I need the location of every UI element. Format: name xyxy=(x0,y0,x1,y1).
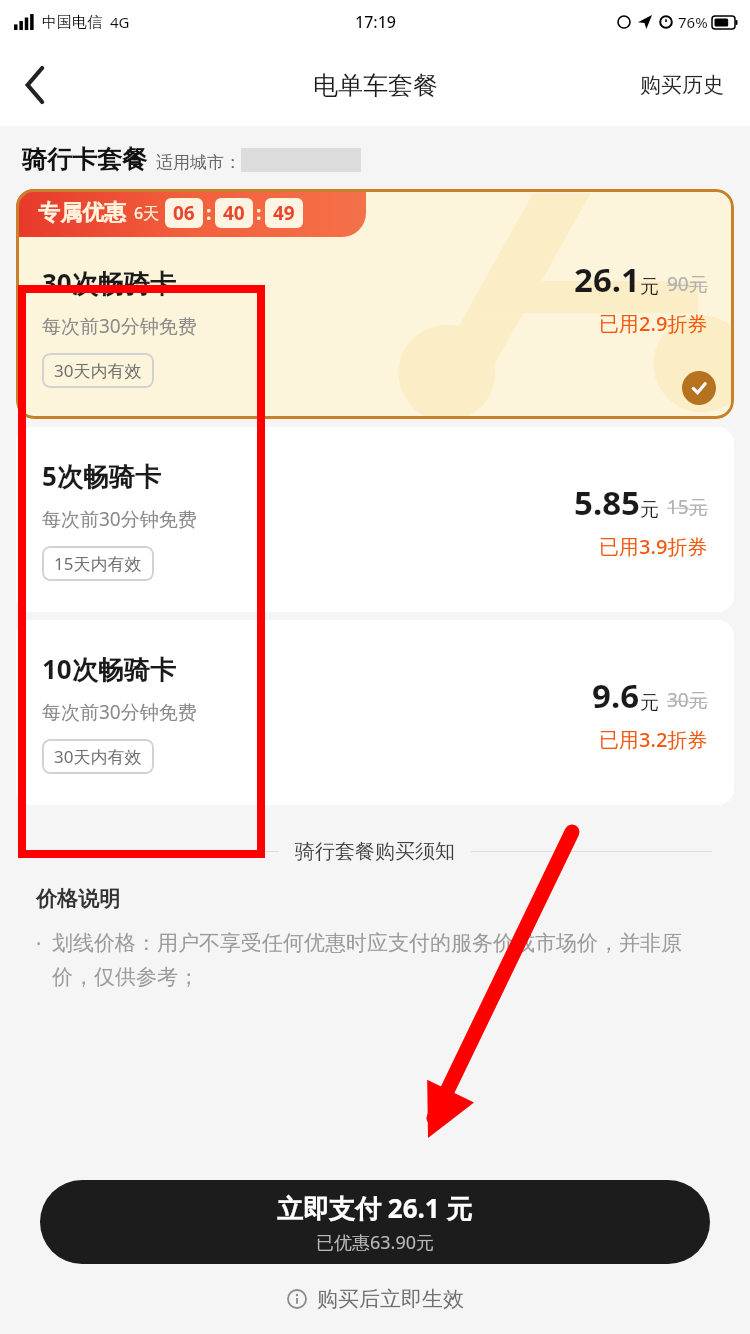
staticText: 30天内有效 xyxy=(54,359,142,382)
staticText: : xyxy=(206,200,212,226)
staticText: 26.1 xyxy=(574,257,640,302)
staticText: 4G xyxy=(110,12,130,32)
staticText: 6天 xyxy=(134,202,160,224)
button[interactable]: 5次畅骑卡 xyxy=(16,427,734,612)
staticText: 90元 xyxy=(667,271,708,297)
staticText: 15天内有效 xyxy=(54,552,142,575)
staticText: · xyxy=(36,930,42,957)
staticText: 每次前30分钟免费 xyxy=(42,506,197,532)
staticText: 适用城市： xyxy=(156,152,241,173)
button[interactable]: 10次畅骑卡 xyxy=(16,620,734,805)
staticText: 电单车套餐 xyxy=(313,70,438,101)
staticText: 每次前30分钟免费 xyxy=(42,313,197,339)
staticText: 9.6 xyxy=(592,673,640,718)
staticText: 已用3.2折券 xyxy=(599,726,708,753)
staticText: 骑行套餐购买须知 xyxy=(295,839,455,864)
button[interactable]: 立即支付 26.1 元 xyxy=(40,1180,710,1264)
button[interactable]: 返回 xyxy=(8,57,64,113)
staticText: 专属优惠 xyxy=(38,199,126,227)
staticText: 已用2.9折券 xyxy=(599,310,708,337)
staticText: 已用3.9折券 xyxy=(599,533,708,560)
staticText: 划线价格：用户不享受任何优惠时应支付的服务价或市场价，并非原价，仅供参考； xyxy=(52,930,714,991)
staticText: 15元 xyxy=(667,494,708,520)
staticText: 立即支付 26.1 元 xyxy=(277,1190,473,1226)
button[interactable]: 购买历史 xyxy=(632,64,732,106)
staticText: 30次畅骑卡 xyxy=(42,265,176,301)
staticText: 5.85 xyxy=(574,480,640,525)
staticText: : xyxy=(256,200,262,226)
staticText: 10次畅骑卡 xyxy=(42,651,176,687)
button[interactable]: 专属优惠 xyxy=(16,189,734,419)
staticText: 骑行卡套餐 xyxy=(22,144,147,175)
staticText: 17:19 xyxy=(355,11,396,33)
staticText: 价格说明 xyxy=(36,886,120,912)
staticText: 49 xyxy=(273,200,295,226)
staticText: 5次畅骑卡 xyxy=(42,458,161,494)
staticText: 购买历史 xyxy=(640,72,724,98)
staticText: 中国电信 xyxy=(42,13,102,32)
staticText: 40 xyxy=(223,200,245,226)
staticText: 元 xyxy=(640,498,659,522)
staticText: 30天内有效 xyxy=(54,745,142,768)
staticText: 06 xyxy=(173,200,195,226)
staticText: 已优惠63.90元 xyxy=(316,1230,435,1255)
staticText: 购买后立即生效 xyxy=(317,1286,464,1312)
staticText: 每次前30分钟免费 xyxy=(42,699,197,725)
staticText: 元 xyxy=(640,275,659,299)
staticText: 元 xyxy=(640,691,659,715)
staticText: 30元 xyxy=(667,687,708,713)
staticText: 76% xyxy=(678,12,708,32)
